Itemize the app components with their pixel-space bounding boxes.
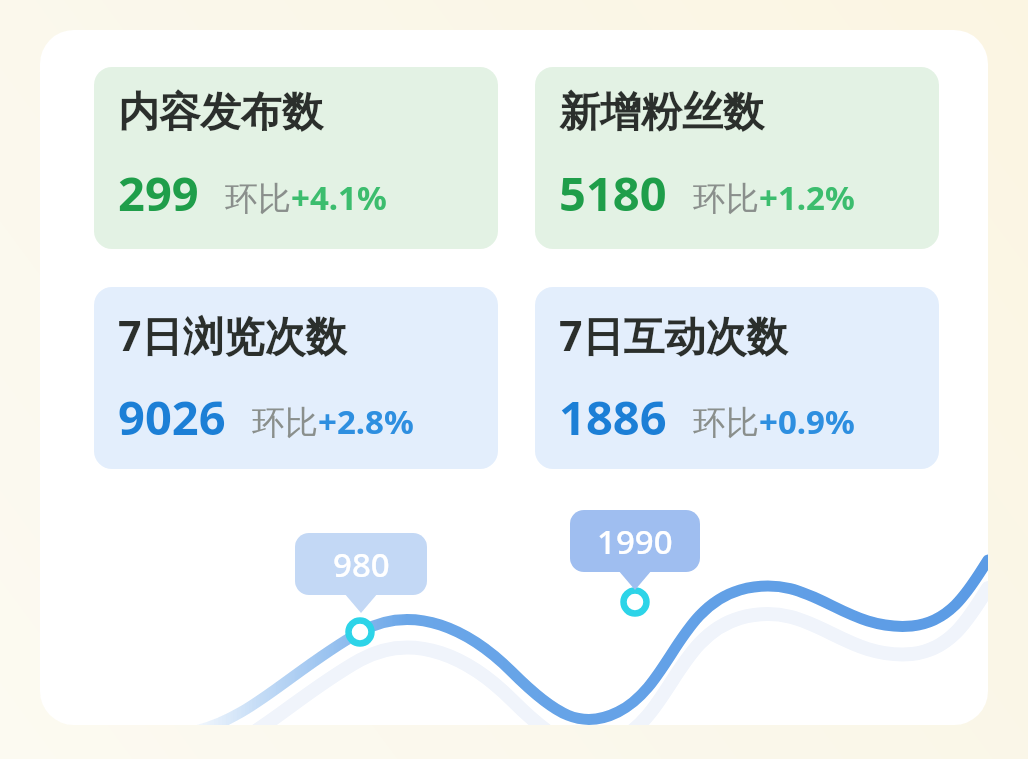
staticText: 环比+0.9%: [693, 399, 855, 444]
button[interactable]: 7日浏览次数: [94, 287, 498, 469]
staticText: 环比+1.2%: [693, 175, 855, 220]
other: Weekly trend chart: [40, 30, 988, 725]
staticText: 环比+4.1%: [225, 175, 387, 220]
staticText: 新增粉丝数: [559, 87, 764, 139]
staticText: 7日浏览次数: [118, 307, 347, 363]
staticText: 内容发布数: [118, 87, 323, 139]
button[interactable]: 7日互动次数: [535, 287, 939, 469]
staticText: 299: [118, 161, 199, 225]
staticText: 980: [333, 542, 390, 587]
staticText: 环比+2.8%: [252, 399, 414, 444]
staticText: 1886: [559, 385, 667, 449]
staticText: 1990: [597, 519, 673, 564]
button[interactable]: Data point 1990: [570, 510, 700, 592]
button[interactable]: 内容发布数: [94, 67, 498, 249]
staticText: 5180: [559, 161, 667, 225]
staticText: 7日互动次数: [559, 307, 788, 363]
staticText: 9026: [118, 385, 226, 449]
button[interactable]: 新增粉丝数: [535, 67, 939, 249]
button[interactable]: Data point 980: [295, 533, 427, 615]
